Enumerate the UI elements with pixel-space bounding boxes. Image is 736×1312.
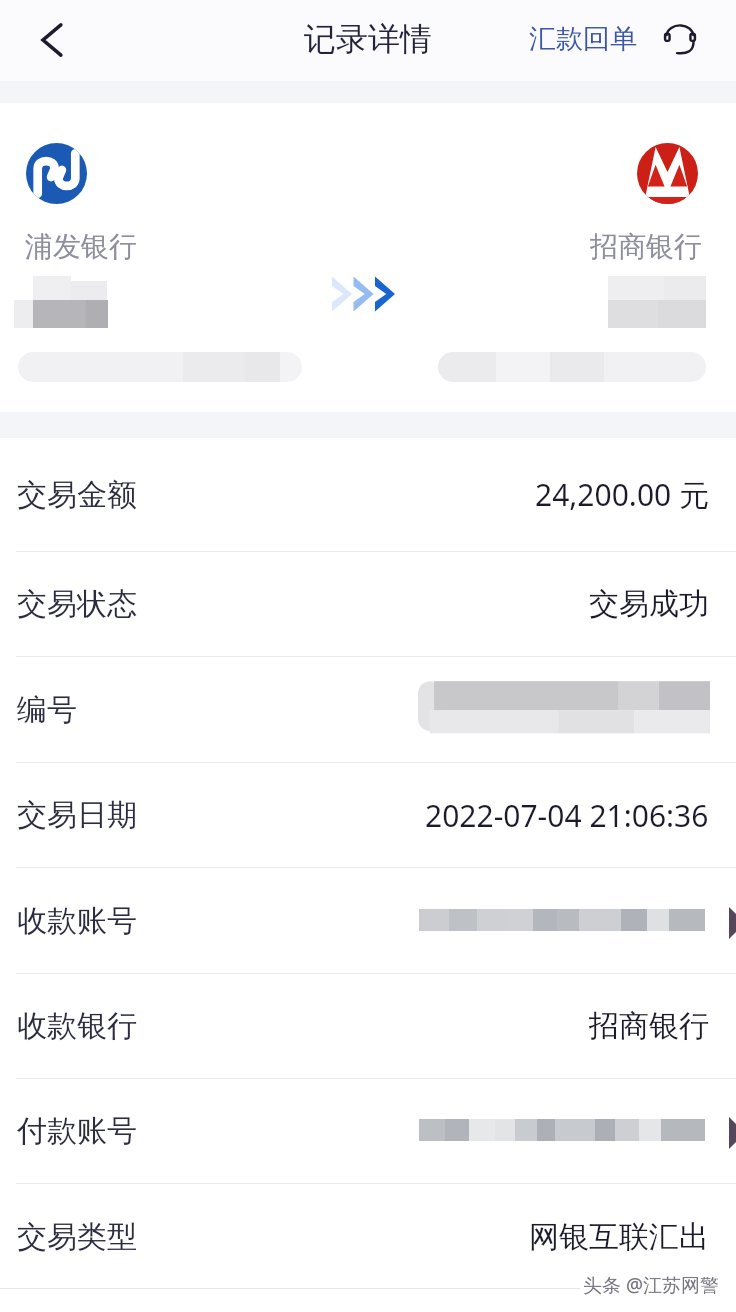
button[interactable]: Customer service	[657, 15, 703, 61]
button[interactable]: 汇款回单	[523, 12, 643, 66]
staticText: 收款银行	[17, 1007, 137, 1045]
staticText: 付款账号	[17, 1112, 137, 1150]
staticText: 浦发银行	[25, 229, 137, 264]
staticText: 交易成功	[589, 585, 709, 623]
button[interactable]: 交易日期	[0, 763, 736, 867]
staticText: 编号	[17, 691, 77, 729]
staticText: 网银互联汇出	[529, 1218, 709, 1256]
button[interactable]: 编号	[0, 657, 736, 762]
staticText: 24,200.00 元	[535, 474, 709, 515]
staticText: 交易类型	[17, 1218, 137, 1256]
staticText: 收款账号	[17, 902, 137, 940]
button[interactable]: 付款账号	[0, 1079, 736, 1183]
staticText: 招商银行	[590, 229, 702, 264]
staticText: 记录详情	[304, 19, 432, 59]
staticText: 2022-07-04 21:06:36	[425, 795, 709, 836]
button[interactable]: Back	[23, 12, 79, 68]
button[interactable]: 交易状态	[0, 552, 736, 656]
button[interactable]: 交易金额	[0, 438, 736, 551]
staticText: 交易日期	[17, 796, 137, 834]
staticText: 交易状态	[17, 585, 137, 623]
staticText: 汇款回单	[529, 22, 637, 56]
button[interactable]: 收款银行	[0, 974, 736, 1078]
button[interactable]: 收款账号	[0, 868, 736, 973]
button[interactable]: 交易类型	[0, 1184, 736, 1289]
staticText: 交易金额	[17, 476, 137, 514]
staticText: 招商银行	[589, 1007, 709, 1045]
staticText: 头条 @江苏网警	[583, 1272, 720, 1298]
